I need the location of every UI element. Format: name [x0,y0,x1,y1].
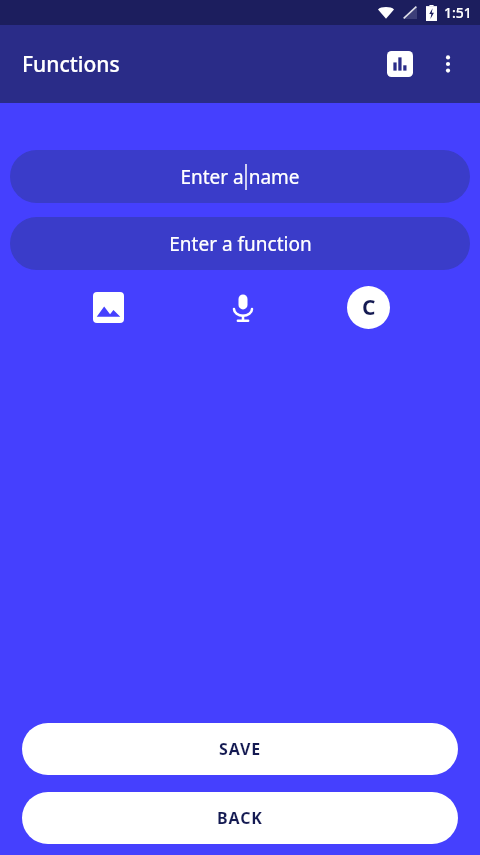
staticText: Enter a function [169,231,312,257]
button[interactable]: More options [424,40,472,88]
staticText: Functions [22,50,120,79]
staticText: BACK [217,807,263,829]
button[interactable]: Voice input [219,283,267,331]
staticText: 1:51 [444,3,472,22]
button[interactable]: SAVE [22,723,458,775]
button[interactable]: Enter a function [10,217,470,270]
button[interactable]: Add image [84,283,132,331]
button[interactable]: Clear [344,283,392,331]
staticText: SAVE [219,738,262,760]
button[interactable]: Enter a name [10,150,470,203]
button[interactable]: BACK [22,792,458,844]
button[interactable]: Statistics [376,40,424,88]
staticText: C [362,293,376,322]
staticText: Enter a name [180,164,300,190]
